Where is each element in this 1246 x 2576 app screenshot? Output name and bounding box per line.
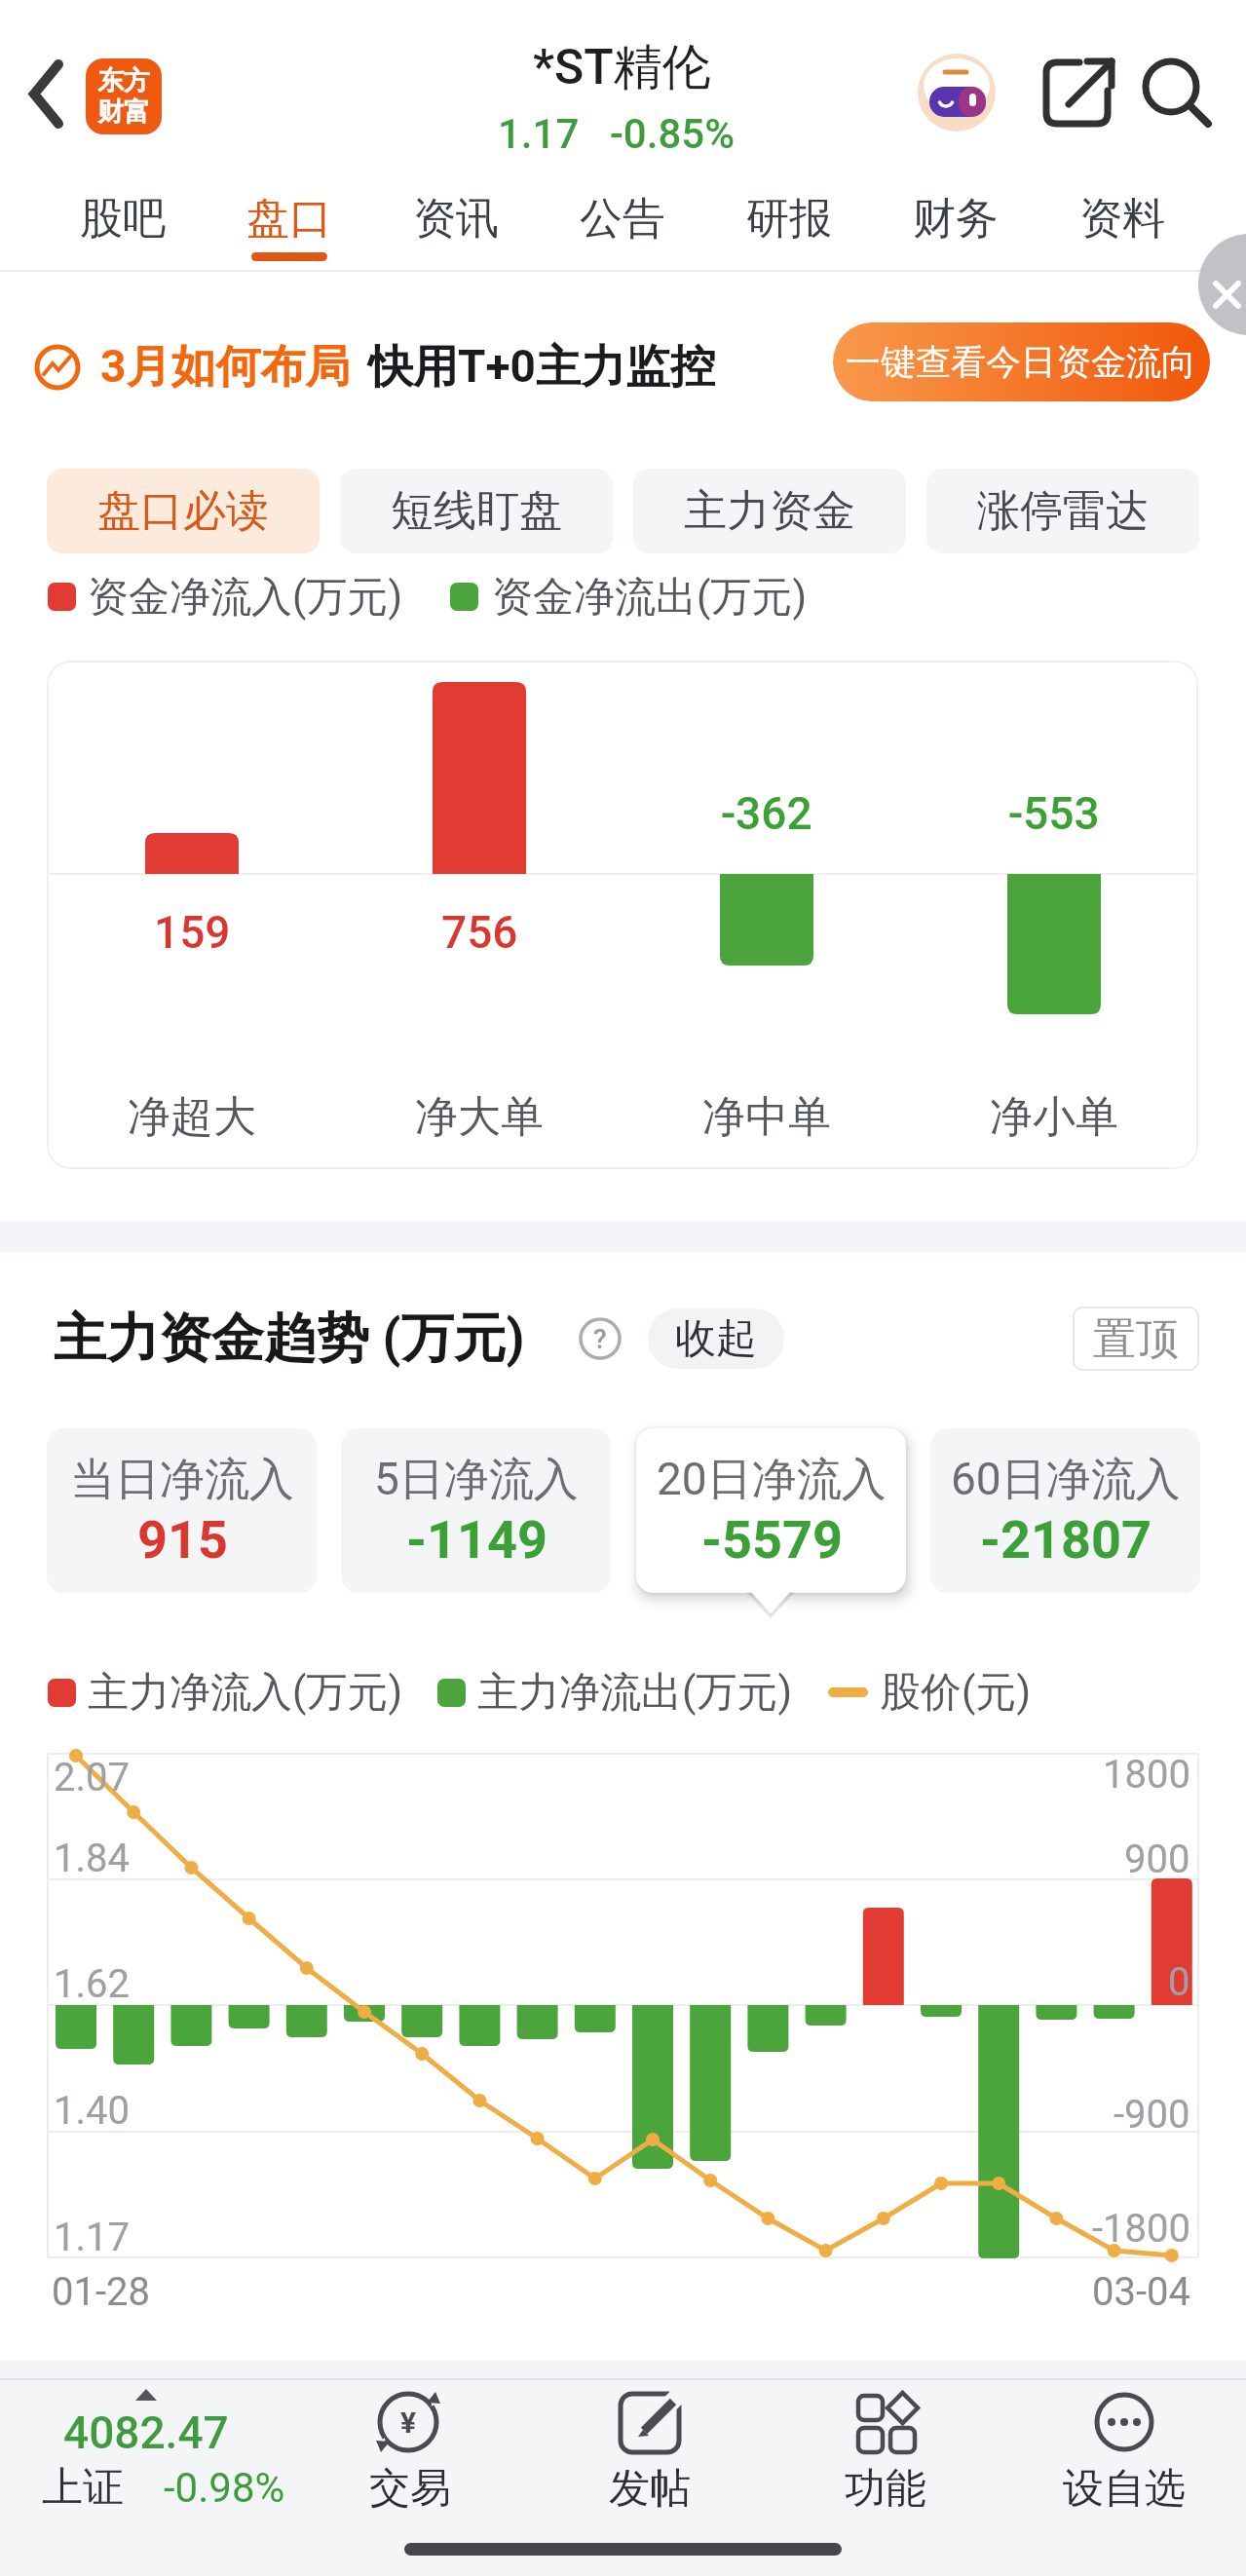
staticText: 一键查看今日资金流向 [846,340,1196,384]
button[interactable] [648,1308,784,1369]
staticText: 净超大 [128,1090,256,1144]
staticText: -1149 [406,1509,547,1571]
button[interactable] [40,170,206,268]
staticText: 财富 [97,95,150,129]
staticText: 上证 [42,2462,124,2514]
button[interactable] [373,170,539,268]
button[interactable] [341,2387,477,2504]
staticText: 财务 [913,192,999,246]
staticText: 股吧 [80,192,166,246]
button[interactable] [1196,273,1246,326]
button[interactable] [207,170,372,268]
staticText: 净大单 [415,1090,544,1144]
staticText: 资料 [1079,192,1165,246]
staticText: 公告 [580,192,665,246]
button[interactable] [633,469,906,553]
staticText: 股价(元) [880,1667,1031,1719]
staticText: 1.62 [54,1961,130,2007]
staticText: -362 [721,787,812,840]
button[interactable] [47,469,320,553]
staticText: 短线盯盘 [391,484,562,538]
staticText: 主力净流入(万元) [88,1667,402,1719]
staticText: 2.07 [54,1755,130,1800]
button[interactable] [582,2387,718,2504]
staticText: -0.98% [164,2464,285,2512]
staticText: -900 [1114,2092,1190,2138]
button[interactable] [833,322,1210,401]
staticText: 主力净流出(万元) [477,1667,792,1719]
staticText: 1.17 [54,2215,130,2260]
staticText: 发帖 [609,2463,691,2515]
staticText: 收起 [675,1313,757,1365]
staticText: 交易 [369,2463,451,2515]
button[interactable] [1135,54,1218,136]
staticText: 主力资金 [684,484,855,538]
staticText: ? [593,1323,607,1355]
button[interactable] [636,1428,906,1593]
button[interactable] [340,469,613,553]
staticText: 1.17 [498,110,580,158]
button[interactable] [341,1428,611,1593]
staticText: 置顶 [1093,1312,1179,1366]
staticText: 159 [154,906,231,959]
button[interactable] [1039,170,1205,268]
staticText: 4082.47 [63,2406,229,2459]
staticText: 3月如何布局 [100,339,351,396]
button[interactable] [916,52,999,134]
staticText: 0 [1168,1959,1190,2005]
button[interactable] [817,2387,954,2504]
staticText: 900 [1124,1837,1190,1882]
staticText: 5日净流入 [374,1452,579,1508]
staticText: 756 [441,906,518,959]
button[interactable] [706,170,872,268]
staticText: 当日净流入 [70,1452,294,1508]
staticText: -1800 [1092,2206,1190,2252]
staticText: 盘口必读 [97,484,269,538]
staticText: -0.85% [610,110,735,158]
staticText: -21807 [980,1509,1152,1571]
staticText: -553 [1008,787,1100,840]
staticText: 20日净流入 [657,1452,887,1508]
staticText: 1.40 [54,2088,130,2134]
staticText: 资金净流出(万元) [492,572,807,624]
button[interactable] [873,170,1038,268]
staticText: 1800 [1103,1752,1190,1798]
button[interactable] [1056,2387,1192,2504]
staticText: 盘口 [246,192,332,246]
staticText: 资讯 [413,192,499,246]
staticText: 研报 [746,192,832,246]
staticText: 60日净流入 [951,1452,1181,1508]
staticText: 03-04 [1092,2269,1190,2315]
staticText: 净中单 [702,1090,831,1144]
button[interactable] [540,170,705,268]
staticText: -5579 [701,1509,843,1571]
staticText: 快用T+0主力监控 [368,339,715,396]
staticText: 东方 [97,64,150,97]
button[interactable] [1073,1307,1199,1371]
staticText: 1.84 [54,1836,130,1881]
staticText: 01-28 [52,2269,150,2315]
button[interactable] [19,49,88,141]
button[interactable] [47,1428,317,1593]
button[interactable] [29,2387,302,2504]
staticText: *ST精伦 [533,37,711,98]
staticText: 功能 [845,2463,926,2515]
button[interactable] [930,1428,1200,1593]
staticText: 涨停雷达 [977,484,1149,538]
staticText: 主力资金趋势 (万元) [54,1306,525,1372]
staticText: 设自选 [1063,2463,1186,2515]
staticText: 资金净流入(万元) [88,572,402,624]
staticText: 净小单 [990,1090,1118,1144]
staticText: 915 [137,1509,228,1571]
button[interactable] [1038,54,1115,132]
button[interactable] [86,58,162,134]
staticText: ¥ [400,2406,417,2440]
button[interactable] [926,469,1199,553]
